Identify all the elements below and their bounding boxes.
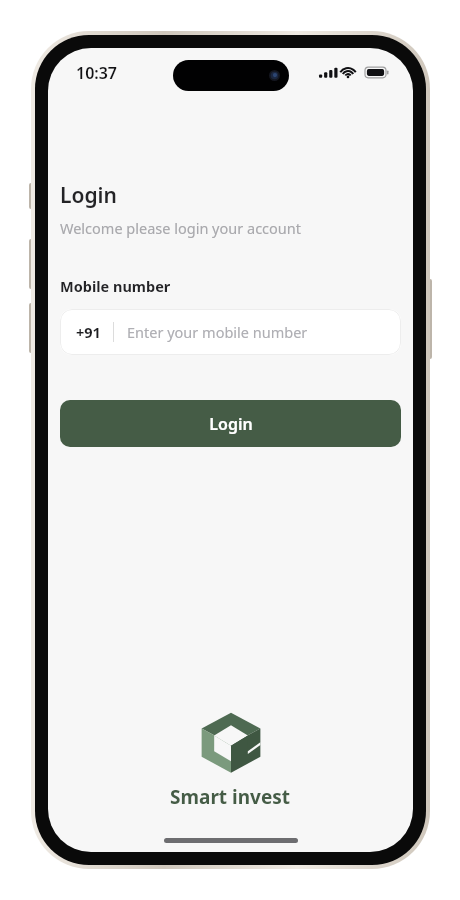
staticText: Enter your mobile number <box>127 322 308 342</box>
staticText: Login <box>60 181 117 210</box>
staticText: Login <box>209 413 253 435</box>
staticText: 10:37 <box>76 62 118 84</box>
staticText: Mobile number <box>60 276 171 296</box>
button[interactable]: +91 <box>60 309 401 355</box>
staticText: Welcome please login your account <box>60 218 301 238</box>
button[interactable]: Login <box>60 400 401 447</box>
staticText: Smart invest <box>170 784 291 810</box>
other: Smart invest logo <box>198 709 264 775</box>
staticText: +91 <box>76 322 101 342</box>
